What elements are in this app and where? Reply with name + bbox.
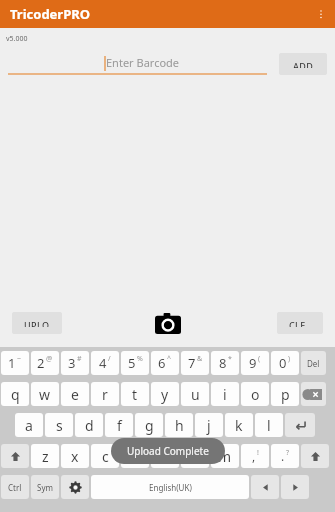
button[interactable]: [1, 444, 29, 468]
button[interactable]: t: [121, 382, 149, 406]
button[interactable]: w: [31, 382, 59, 406]
button[interactable]: 0: [271, 351, 299, 375]
staticText: s: [56, 416, 63, 435]
button[interactable]: [301, 382, 326, 406]
button[interactable]: 7: [181, 351, 209, 375]
staticText: 2: [37, 354, 45, 372]
button[interactable]: 2: [31, 351, 59, 375]
staticText: TricoderPRO: [10, 5, 91, 23]
button[interactable]: .: [271, 444, 299, 468]
staticText: x: [71, 447, 79, 466]
staticText: 3: [68, 354, 76, 372]
button[interactable]: Sym: [31, 475, 59, 499]
button[interactable]: d: [75, 413, 103, 437]
staticText: ~: [17, 354, 22, 364]
staticText: 6: [158, 354, 166, 372]
button[interactable]: [301, 444, 329, 468]
staticText: !: [257, 448, 259, 458]
staticText: 1: [8, 354, 16, 372]
staticText: ^: [167, 354, 172, 364]
staticText: ?: [286, 448, 290, 458]
button[interactable]: CLEAR: [277, 312, 323, 334]
button[interactable]: [281, 475, 309, 499]
staticText: 4: [99, 354, 107, 372]
staticText: p: [281, 385, 290, 404]
staticText: g: [145, 416, 154, 435]
button[interactable]: [251, 475, 279, 499]
staticText: ADD: [293, 60, 314, 68]
button[interactable]: v: [121, 444, 149, 468]
staticText: 0: [279, 354, 287, 372]
staticText: #: [77, 354, 82, 364]
button[interactable]: x: [61, 444, 89, 468]
button[interactable]: j: [195, 413, 223, 437]
staticText: &: [197, 354, 203, 364]
button[interactable]: Ctrl: [1, 475, 29, 499]
button[interactable]: b: [151, 444, 179, 468]
button[interactable]: i: [211, 382, 239, 406]
button[interactable]: g: [135, 413, 163, 437]
staticText: Ctrl: [8, 482, 22, 493]
button[interactable]: More options: [307, 0, 335, 28]
button[interactable]: Enter Barcode: [8, 48, 267, 80]
staticText: .: [281, 448, 285, 464]
button[interactable]: s: [45, 413, 73, 437]
button[interactable]: m: [211, 444, 239, 468]
button[interactable]: r: [91, 382, 119, 406]
button[interactable]: 5: [121, 351, 149, 375]
button[interactable]: 3: [61, 351, 89, 375]
staticText: t: [132, 385, 138, 404]
staticText: a: [25, 416, 33, 435]
button[interactable]: 1: [1, 351, 29, 375]
button[interactable]: p: [271, 382, 299, 406]
staticText: z: [42, 447, 49, 466]
button[interactable]: z: [31, 444, 59, 468]
staticText: c: [102, 447, 109, 466]
button[interactable]: c: [91, 444, 119, 468]
button[interactable]: k: [225, 413, 253, 437]
staticText: i: [223, 385, 227, 404]
button[interactable]: Del: [301, 351, 326, 375]
button[interactable]: English(UK): [91, 475, 249, 499]
staticText: Del: [307, 358, 320, 369]
button[interactable]: [285, 413, 315, 437]
button[interactable]: y: [151, 382, 179, 406]
staticText: u: [191, 385, 200, 404]
staticText: *: [228, 354, 232, 364]
staticText: 7: [188, 354, 196, 372]
button[interactable]: 6: [151, 351, 179, 375]
button[interactable]: ADD: [279, 53, 327, 75]
staticText: q: [11, 385, 20, 404]
button[interactable]: UPLOAD: [12, 312, 62, 334]
button[interactable]: q: [1, 382, 29, 406]
staticText: v: [131, 447, 139, 466]
staticText: ): [288, 354, 291, 364]
staticText: r: [102, 385, 108, 404]
staticText: 8: [219, 354, 227, 372]
button[interactable]: 4: [91, 351, 119, 375]
staticText: k: [235, 416, 243, 435]
button[interactable]: a: [15, 413, 43, 437]
button[interactable]: ,: [241, 444, 269, 468]
button[interactable]: f: [105, 413, 133, 437]
button[interactable]: l: [255, 413, 283, 437]
staticText: CLEAR: [289, 319, 311, 327]
button[interactable]: u: [181, 382, 209, 406]
staticText: m: [218, 447, 232, 466]
staticText: e: [71, 385, 79, 404]
button[interactable]: 9: [241, 351, 269, 375]
button[interactable]: o: [241, 382, 269, 406]
button[interactable]: Scan with camera: [151, 306, 185, 340]
button[interactable]: e: [61, 382, 89, 406]
staticText: b: [161, 447, 170, 466]
staticText: UPLOAD: [24, 319, 50, 327]
button[interactable]: [61, 475, 89, 499]
staticText: o: [251, 385, 260, 404]
button[interactable]: h: [165, 413, 193, 437]
staticText: j: [207, 416, 211, 435]
staticText: %: [137, 354, 143, 364]
button[interactable]: 8: [211, 351, 239, 375]
staticText: v5.000: [6, 34, 28, 44]
button[interactable]: n: [181, 444, 209, 468]
staticText: w: [39, 385, 51, 404]
